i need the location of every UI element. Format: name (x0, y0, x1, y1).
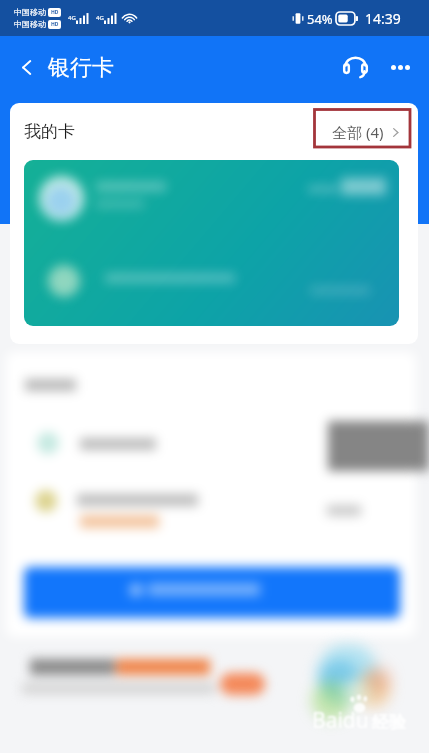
staticText: 14:39 (365, 9, 401, 28)
staticText: 银行卡 (48, 54, 114, 82)
staticText: Baidu (312, 706, 369, 735)
button[interactable]: More options (382, 49, 418, 85)
button[interactable]: Customer service (334, 46, 376, 88)
staticText: 4G (68, 14, 76, 22)
staticText: HD (51, 21, 59, 28)
staticText: 54% (307, 10, 333, 28)
button[interactable]: 全部 (4) (324, 116, 410, 148)
staticText: 经验 (372, 712, 406, 733)
button[interactable]: Back (8, 49, 44, 85)
staticText: 中国移动 (14, 19, 46, 29)
staticText: 全部 (4) (332, 122, 384, 142)
staticText: 我的卡 (24, 121, 75, 142)
staticText: 4G (96, 14, 104, 22)
button[interactable] (24, 567, 400, 618)
staticText: 中国移动 (14, 7, 46, 17)
staticText: HD (51, 9, 59, 16)
